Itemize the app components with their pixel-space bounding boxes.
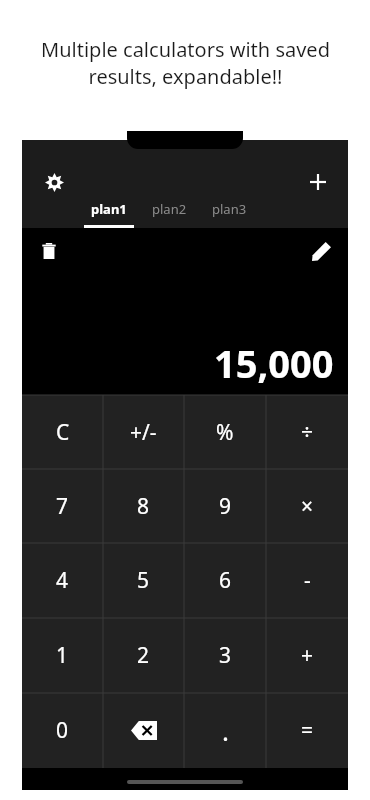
button[interactable]: % [184,395,266,469]
staticText: C [56,418,70,447]
button[interactable]: 8 [103,469,184,543]
staticText: ÷ [301,418,314,447]
button[interactable]: 3 [184,618,266,693]
button[interactable]: 6 [184,543,266,618]
button[interactable]: 7 [22,469,103,543]
button[interactable]: + [266,618,348,693]
staticText: 3 [219,641,232,670]
button[interactable]: plan3 [199,200,259,228]
button[interactable]: +/- [103,395,184,469]
button[interactable]: Add calculator [296,160,340,204]
button[interactable]: plan1 [79,200,139,228]
button[interactable]: Delete [28,230,70,272]
button[interactable]: . [184,693,266,768]
staticText: 8 [137,492,150,521]
button[interactable]: - [266,543,348,618]
staticText: 0 [56,716,69,745]
button[interactable]: C [22,395,103,469]
button[interactable]: 1 [22,618,103,693]
button[interactable]: Settings [32,160,76,204]
staticText: 7 [56,492,69,521]
staticText: 5 [137,566,150,595]
button[interactable]: 4 [22,543,103,618]
button[interactable]: ÷ [266,395,348,469]
staticText: 1 [56,641,69,670]
button[interactable]: 5 [103,543,184,618]
button[interactable]: = [266,693,348,768]
staticText: - [304,566,311,595]
staticText: 4 [56,566,69,595]
staticText: = [301,716,314,745]
staticText: + [301,641,314,670]
button[interactable]: Edit [300,230,342,272]
button[interactable]: 2 [103,618,184,693]
staticText: plan2 [152,200,187,218]
button[interactable]: 0 [22,693,103,768]
staticText: 9 [219,492,232,521]
staticText: 2 [137,641,150,670]
staticText: 6 [219,566,232,595]
staticText: plan3 [212,200,247,218]
button[interactable]: 9 [184,469,266,543]
staticText: plan1 [91,200,127,218]
staticText: × [301,492,314,521]
staticText: Multiple calculators with saved results,… [41,36,330,90]
button[interactable]: plan2 [139,200,199,228]
staticText: 15,000 [214,337,334,389]
staticText: +/- [130,418,157,447]
staticText: . [222,713,229,748]
staticText: % [216,418,234,447]
button[interactable]: × [266,469,348,543]
button[interactable]: Backspace [103,693,184,768]
